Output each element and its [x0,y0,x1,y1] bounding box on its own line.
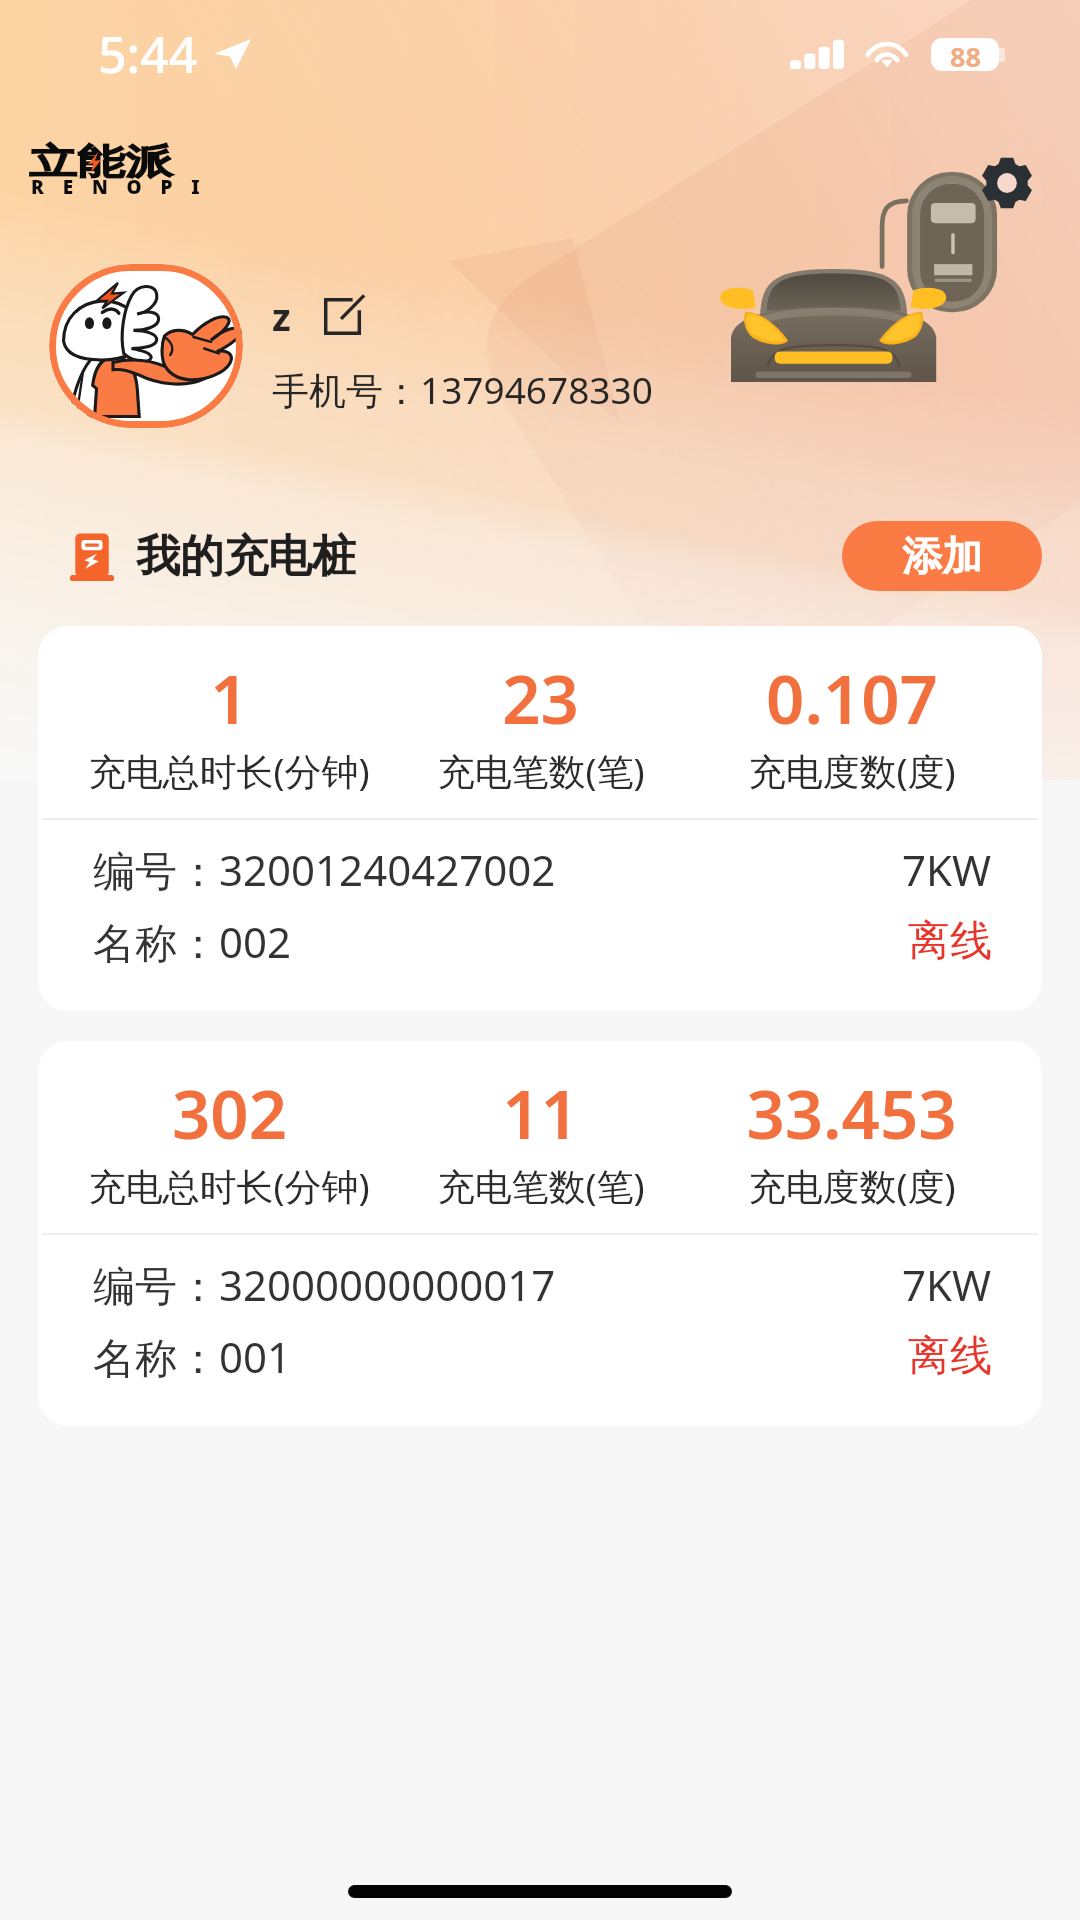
staticText: RENOPI [31,174,251,200]
staticText: 充电笔数(笔) [437,1160,645,1211]
staticText: 充电度数(度) [748,745,956,796]
button[interactable]: 添加 [842,521,1042,591]
staticText: 5:44 [98,20,198,88]
staticText: 我的充电桩 [136,529,356,584]
button[interactable]: Avatar [49,264,243,428]
staticText: z [272,290,291,342]
staticText: 编号：32000000000017 [93,1256,556,1313]
staticText: 充电总时长(分钟) [88,745,370,796]
staticText: 手机号：13794678330 [272,364,653,415]
staticText: 11 [502,1067,579,1158]
staticText: 离线 [908,1330,992,1383]
staticText: 离线 [908,915,992,968]
staticText: 23 [502,652,579,743]
staticText: 302 [172,1067,287,1158]
staticText: 88 [950,38,981,71]
staticText: 充电度数(度) [748,1160,956,1211]
staticText: 立能派 [29,140,173,184]
staticText: 编号：32001240427002 [93,841,556,898]
staticText: 7KW [902,1256,992,1313]
button[interactable]: 302 [38,1041,1042,1426]
staticText: 1 [210,652,249,743]
button[interactable]: Settings [962,138,1052,228]
staticText: 名称：002 [93,913,292,970]
staticText: 添加 [902,531,982,581]
staticText: 充电总时长(分钟) [88,1160,370,1211]
staticText: 充电笔数(笔) [437,745,645,796]
button[interactable]: 1 [38,626,1042,1011]
staticText: 33.453 [746,1067,957,1158]
button[interactable]: Edit name [319,292,367,340]
staticText: 名称：001 [93,1328,292,1385]
staticText: 7KW [902,841,992,898]
staticText: 0.107 [766,652,938,743]
